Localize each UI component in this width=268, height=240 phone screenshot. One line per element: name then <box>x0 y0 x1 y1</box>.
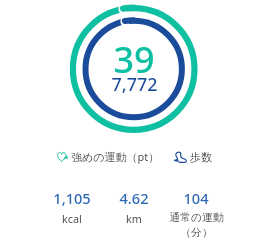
staticText: kcal <box>62 211 82 226</box>
button[interactable]: 4.62 <box>103 188 165 226</box>
staticText: 4.62 <box>119 188 149 208</box>
staticText: 1,105 <box>53 188 91 208</box>
staticText: 104 <box>183 188 209 208</box>
staticText: 通常の運動 （分） <box>169 211 224 239</box>
other: Intensity minutes <box>56 151 68 163</box>
button[interactable]: Intensity minutes <box>56 149 160 164</box>
button[interactable]: 1,105 <box>41 188 103 226</box>
staticText: 歩数 <box>190 150 212 164</box>
button[interactable]: Steps <box>174 150 212 164</box>
other: Steps <box>174 151 187 164</box>
staticText: 7,772 <box>111 72 158 97</box>
staticText: 39 <box>113 35 155 84</box>
staticText: 強めの運動（pt） <box>71 149 160 164</box>
button[interactable]: 104 <box>165 188 227 239</box>
staticText: km <box>126 211 142 226</box>
